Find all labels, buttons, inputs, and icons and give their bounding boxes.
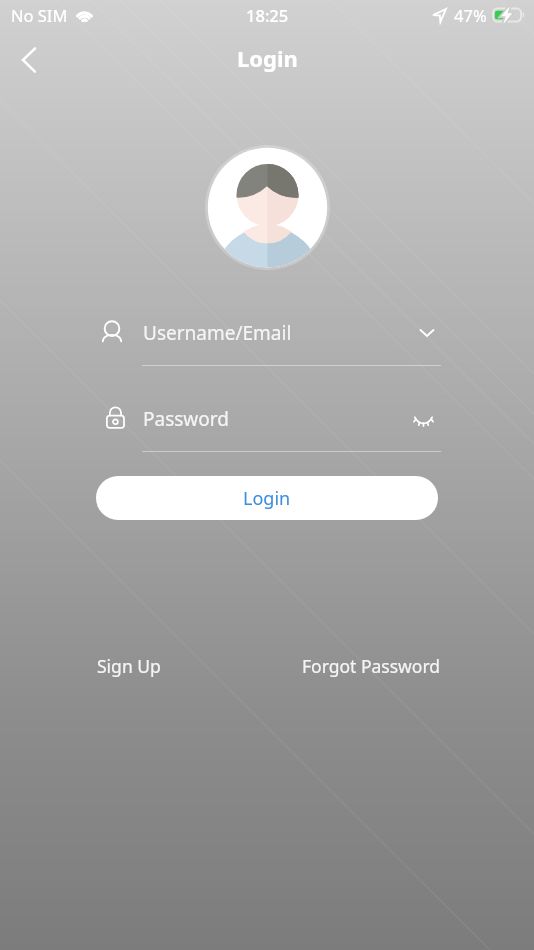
button[interactable]: Back xyxy=(7,38,51,82)
staticText: Username/Email xyxy=(143,320,292,346)
staticText: 47% xyxy=(454,4,487,26)
button[interactable]: Forgot Password xyxy=(282,648,461,684)
staticText: No SIM xyxy=(11,4,68,26)
staticText: Forgot Password xyxy=(302,654,441,678)
staticText: Login xyxy=(237,43,298,73)
staticText: Password xyxy=(143,406,229,432)
staticText: 18:25 xyxy=(246,4,289,26)
button[interactable]: Login xyxy=(96,476,438,520)
staticText: Login xyxy=(243,486,291,511)
button[interactable]: Sign Up xyxy=(77,648,181,684)
staticText: Sign Up xyxy=(97,654,161,678)
button[interactable]: Show password xyxy=(403,401,443,441)
button[interactable]: Choose account xyxy=(407,313,447,353)
